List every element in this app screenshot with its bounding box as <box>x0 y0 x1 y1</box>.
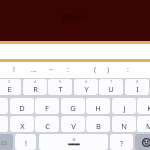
button[interactable]: M <box>137 116 150 132</box>
button[interactable]: S <box>0 98 8 114</box>
button[interactable]: B <box>86 116 110 132</box>
button[interactable]: Symbols <box>0 134 13 150</box>
button[interactable]: 7 <box>99 79 123 95</box>
staticText: D <box>19 103 25 113</box>
button[interactable]: Space <box>39 134 108 150</box>
button[interactable]: H <box>86 98 110 114</box>
staticText: 4 <box>34 79 37 84</box>
button[interactable]: Z <box>0 116 8 132</box>
staticText: ! <box>13 65 15 75</box>
button[interactable]: ( <box>88 62 102 78</box>
staticText: H <box>95 103 101 113</box>
button[interactable]: ? <box>110 134 133 150</box>
staticText: M <box>146 121 150 131</box>
button[interactable]: 8 <box>125 79 149 95</box>
staticText: I <box>136 84 139 94</box>
staticText: E <box>7 84 12 94</box>
staticText: U <box>108 84 114 94</box>
button[interactable]: N <box>112 116 136 132</box>
button[interactable]: V <box>61 116 85 132</box>
button[interactable]: 6 <box>74 79 98 95</box>
staticText: ) <box>107 65 110 75</box>
button[interactable]: F <box>35 98 59 114</box>
staticText: ? <box>120 139 124 149</box>
staticText: V <box>71 121 76 131</box>
staticText: N <box>121 121 127 131</box>
button[interactable]: 3 <box>0 79 21 95</box>
staticText: : <box>127 65 129 75</box>
button[interactable]: ... <box>27 62 41 78</box>
staticText: R <box>33 84 38 94</box>
staticText: 3 <box>8 79 11 84</box>
button[interactable]: ~ <box>44 62 58 78</box>
staticText: X <box>20 121 25 131</box>
staticText: F <box>45 103 49 113</box>
staticText: 6 <box>85 79 88 84</box>
staticText: ?123 <box>0 140 7 147</box>
staticText: T <box>58 84 63 94</box>
staticText: 8 <box>136 79 139 84</box>
staticText: J <box>123 103 126 113</box>
button[interactable]: J <box>112 98 136 114</box>
staticText: C <box>45 121 50 131</box>
button[interactable]: Emoji <box>135 134 150 150</box>
button[interactable]: : <box>61 62 75 78</box>
button[interactable]: C <box>35 116 59 132</box>
staticText: ~ <box>49 65 54 75</box>
staticText: ! <box>25 139 27 149</box>
button[interactable]: 5 <box>48 79 72 95</box>
button[interactable]: G <box>61 98 85 114</box>
staticText: G <box>70 103 76 113</box>
button[interactable]: ! <box>15 134 36 150</box>
button[interactable]: 4 <box>23 79 47 95</box>
staticText: 7 <box>110 79 113 84</box>
button[interactable]: : <box>121 62 135 78</box>
staticText: B <box>96 121 101 131</box>
staticText: ... <box>31 65 37 75</box>
staticText: RPG•7 <box>62 11 89 23</box>
staticText: : <box>67 65 69 75</box>
button[interactable]: K <box>137 98 150 114</box>
button[interactable]: ! <box>7 62 21 78</box>
button[interactable]: D <box>10 98 34 114</box>
staticText: K <box>147 103 150 113</box>
staticText: ( <box>94 65 97 75</box>
button[interactable]: ) <box>101 62 115 78</box>
staticText: 5 <box>59 79 62 84</box>
button[interactable]: X <box>10 116 34 132</box>
staticText: Y <box>84 84 89 94</box>
